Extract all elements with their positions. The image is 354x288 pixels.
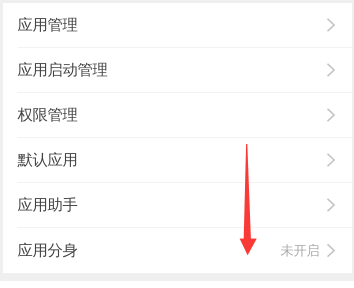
button[interactable]: 应用管理 [3,3,352,48]
button[interactable]: 应用分身 [3,228,352,273]
staticText: 未开启 [281,242,320,259]
staticText: 应用分身 [17,241,77,260]
staticText: 应用启动管理 [17,60,107,80]
button[interactable]: 权限管理 [3,93,352,138]
button[interactable]: 应用助手 [3,183,352,228]
button[interactable]: 应用启动管理 [3,48,352,93]
staticText: 权限管理 [17,105,77,125]
staticText: 应用管理 [17,15,77,35]
staticText: 应用助手 [17,195,77,215]
staticText: 默认应用 [17,150,77,170]
button[interactable]: 默认应用 [3,138,352,183]
